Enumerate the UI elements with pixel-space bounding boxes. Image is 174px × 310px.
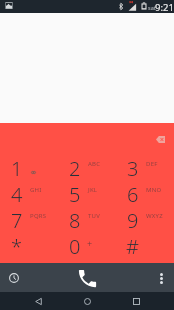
staticText: GHI xyxy=(30,186,42,194)
staticText: 9:21 xyxy=(155,1,174,14)
staticText: 4 xyxy=(11,181,23,207)
button[interactable]: 6 xyxy=(116,181,174,207)
button[interactable]: 3 xyxy=(116,155,174,181)
staticText: # xyxy=(126,233,139,259)
button[interactable]: 4 xyxy=(0,181,58,207)
staticText: * xyxy=(11,233,23,259)
button[interactable]: 5 xyxy=(58,181,116,207)
staticText: WXYZ xyxy=(146,212,163,220)
staticText: 7 xyxy=(11,207,23,233)
staticText: 5 xyxy=(69,181,81,207)
button[interactable]: Call xyxy=(74,265,100,291)
button[interactable]: Backspace xyxy=(149,128,171,150)
button[interactable]: Recent apps xyxy=(127,292,145,310)
button[interactable]: # xyxy=(116,233,174,259)
staticText: 2 xyxy=(69,155,81,181)
button[interactable]: 2 xyxy=(58,155,116,181)
staticText: TUV xyxy=(88,212,101,220)
staticText: DEF xyxy=(146,160,158,168)
button[interactable]: Call history xyxy=(4,268,24,288)
staticText: 9 xyxy=(127,207,139,233)
button[interactable]: Back xyxy=(29,292,47,310)
button[interactable]: 0 xyxy=(58,233,116,259)
staticText: JKL xyxy=(88,186,98,194)
staticText: 6 xyxy=(127,181,139,207)
button[interactable]: 9 xyxy=(116,207,174,233)
button[interactable]: 7 xyxy=(0,207,58,233)
button[interactable]: Home xyxy=(78,292,96,310)
button[interactable]: More options xyxy=(151,268,171,288)
staticText: 1 xyxy=(11,155,23,181)
button[interactable]: 1 xyxy=(0,155,58,181)
staticText: + xyxy=(87,237,93,249)
staticText: ABC xyxy=(88,160,101,168)
button[interactable]: 8 xyxy=(58,207,116,233)
staticText: MNO xyxy=(146,186,162,194)
staticText: PQRS xyxy=(30,212,47,220)
staticText: 8 xyxy=(69,207,81,233)
staticText: 3 xyxy=(127,155,139,181)
staticText: sat xyxy=(148,4,156,11)
staticText: 0 xyxy=(69,233,81,259)
button[interactable]: * xyxy=(0,233,58,259)
